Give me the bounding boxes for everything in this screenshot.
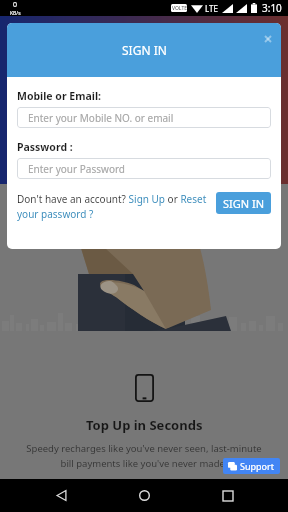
staticText: LTE [205, 3, 218, 14]
button[interactable]: Enter your Mobile NO. or email [17, 107, 271, 128]
button[interactable]: Recents [205, 479, 251, 512]
staticText: Support [240, 460, 274, 472]
staticText: VOLTE [172, 5, 187, 12]
button[interactable]: Back [38, 479, 84, 512]
staticText: SIGN IN [223, 196, 265, 211]
button[interactable]: Enter your Password [17, 158, 271, 179]
staticText: Top Up in Seconds [86, 416, 203, 434]
staticText: SIGN IN [122, 42, 167, 58]
button[interactable]: Home [121, 479, 167, 512]
button[interactable]: Close [261, 32, 275, 46]
staticText: KB/s [10, 10, 21, 16]
staticText: Mobile or Email: [17, 89, 101, 103]
staticText: Enter your Password [28, 162, 126, 176]
staticText: 0 [13, 0, 18, 10]
button[interactable]: Support [223, 458, 280, 474]
staticText: Enter your Mobile NO. or email [28, 111, 174, 125]
staticText: 3:10 [262, 1, 282, 15]
staticText: Speedy recharges like you've never seen,… [20, 442, 268, 470]
button[interactable]: SIGN IN [216, 192, 271, 214]
staticText: Password : [17, 140, 73, 154]
staticText: Don't have an account? Sign Up or Reset … [17, 192, 208, 221]
